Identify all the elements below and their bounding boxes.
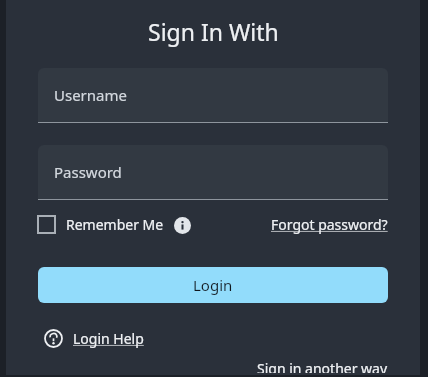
staticText: Sign In With (148, 16, 279, 47)
staticText: Forgot password? (271, 215, 388, 234)
button[interactable]: Sign in another way (257, 357, 388, 375)
button[interactable]: Username (38, 68, 388, 123)
staticText: Login Help (73, 329, 144, 348)
staticText: Username (54, 85, 127, 105)
button[interactable]: Password (38, 145, 388, 200)
staticText: Login (193, 275, 233, 295)
staticText: Sign in another way (257, 359, 388, 373)
button[interactable]: More information (172, 215, 192, 235)
staticText: Password (54, 162, 122, 182)
button[interactable]: Login Help (44, 329, 144, 348)
staticText: Remember Me (66, 215, 164, 234)
button[interactable]: Login (38, 267, 388, 303)
button[interactable]: Remember Me (38, 211, 164, 238)
button[interactable]: Forgot password? (271, 211, 388, 238)
